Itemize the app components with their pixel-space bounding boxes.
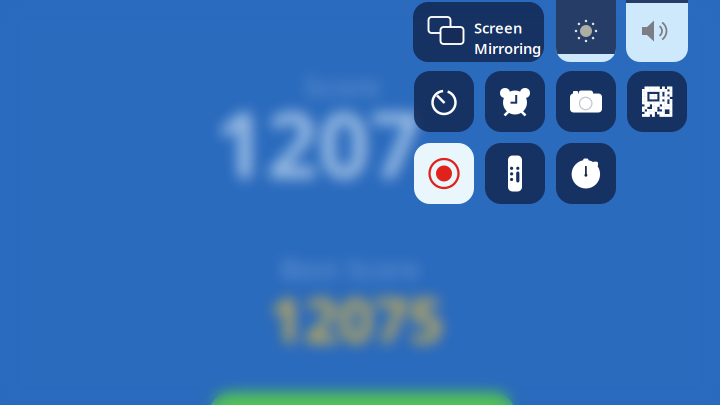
button[interactable]: Volume xyxy=(626,0,688,62)
staticText: Mirroring xyxy=(474,38,541,58)
button[interactable]: Screen Recording xyxy=(414,143,474,204)
button[interactable]: Screen xyxy=(413,2,544,62)
button[interactable]: Timer xyxy=(414,71,474,132)
staticText: Score xyxy=(303,66,381,105)
staticText: Screen xyxy=(474,18,522,37)
staticText: 12075 xyxy=(268,278,443,360)
button[interactable]: Stopwatch xyxy=(556,143,616,204)
staticText: 1207 xyxy=(214,83,422,203)
staticText: Best Score xyxy=(280,250,420,288)
button[interactable]: Code Scanner xyxy=(627,71,687,132)
button[interactable]: Brightness xyxy=(556,0,616,62)
button[interactable]: Apple TV Remote xyxy=(485,143,545,204)
button[interactable]: Alarm xyxy=(485,71,545,132)
button[interactable]: Camera xyxy=(556,71,616,132)
